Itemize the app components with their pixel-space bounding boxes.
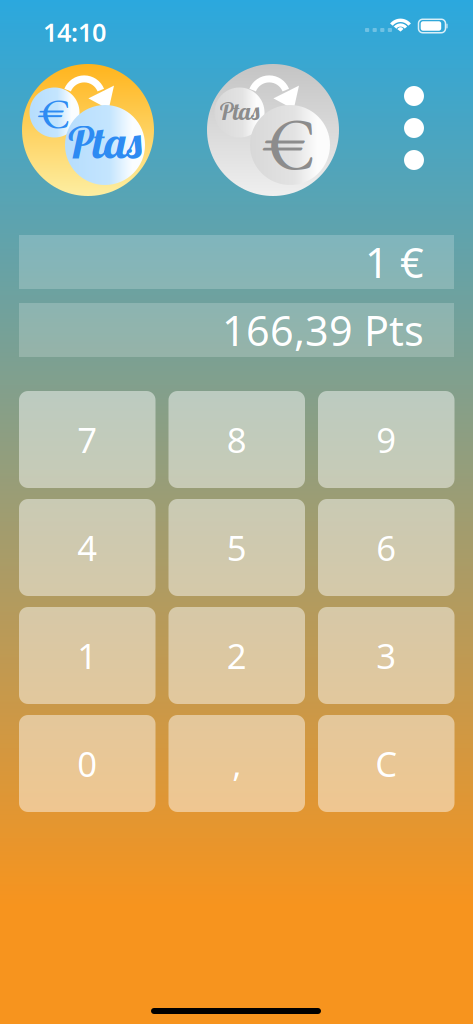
button[interactable]: 1: [19, 607, 155, 704]
staticText: 4: [77, 524, 97, 570]
staticText: 14:10: [43, 15, 106, 49]
staticText: 1: [77, 632, 97, 678]
button[interactable]: More options: [386, 66, 442, 190]
staticText: Ptas: [66, 114, 144, 169]
staticText: €: [39, 84, 70, 142]
staticText: €: [264, 97, 315, 191]
staticText: 1 €: [365, 235, 424, 289]
staticText: 5: [227, 524, 247, 570]
staticText: 3: [376, 632, 396, 678]
button[interactable]: 2: [168, 607, 305, 704]
button[interactable]: 6: [318, 499, 454, 596]
button[interactable]: ,: [168, 715, 305, 812]
staticText: C: [375, 740, 397, 786]
button[interactable]: 9: [318, 391, 454, 488]
button[interactable]: 7: [19, 391, 155, 488]
staticText: 6: [376, 524, 396, 570]
button[interactable]: Convert pesetas to euros: [207, 64, 339, 196]
button[interactable]: 4: [19, 499, 155, 596]
button[interactable]: Convert euros to pesetas: [22, 64, 154, 196]
staticText: 9: [376, 416, 396, 462]
button[interactable]: C: [318, 715, 454, 812]
button[interactable]: 0: [19, 715, 155, 812]
staticText: 0: [77, 740, 97, 786]
staticText: 7: [77, 416, 97, 462]
button[interactable]: 5: [168, 499, 305, 596]
staticText: 166,39 Pts: [222, 303, 424, 357]
staticText: ,: [232, 740, 241, 786]
button[interactable]: 8: [168, 391, 305, 488]
staticText: 2: [227, 632, 247, 678]
button[interactable]: 3: [318, 607, 454, 704]
staticText: 8: [227, 416, 247, 462]
staticText: Ptas: [218, 96, 260, 126]
